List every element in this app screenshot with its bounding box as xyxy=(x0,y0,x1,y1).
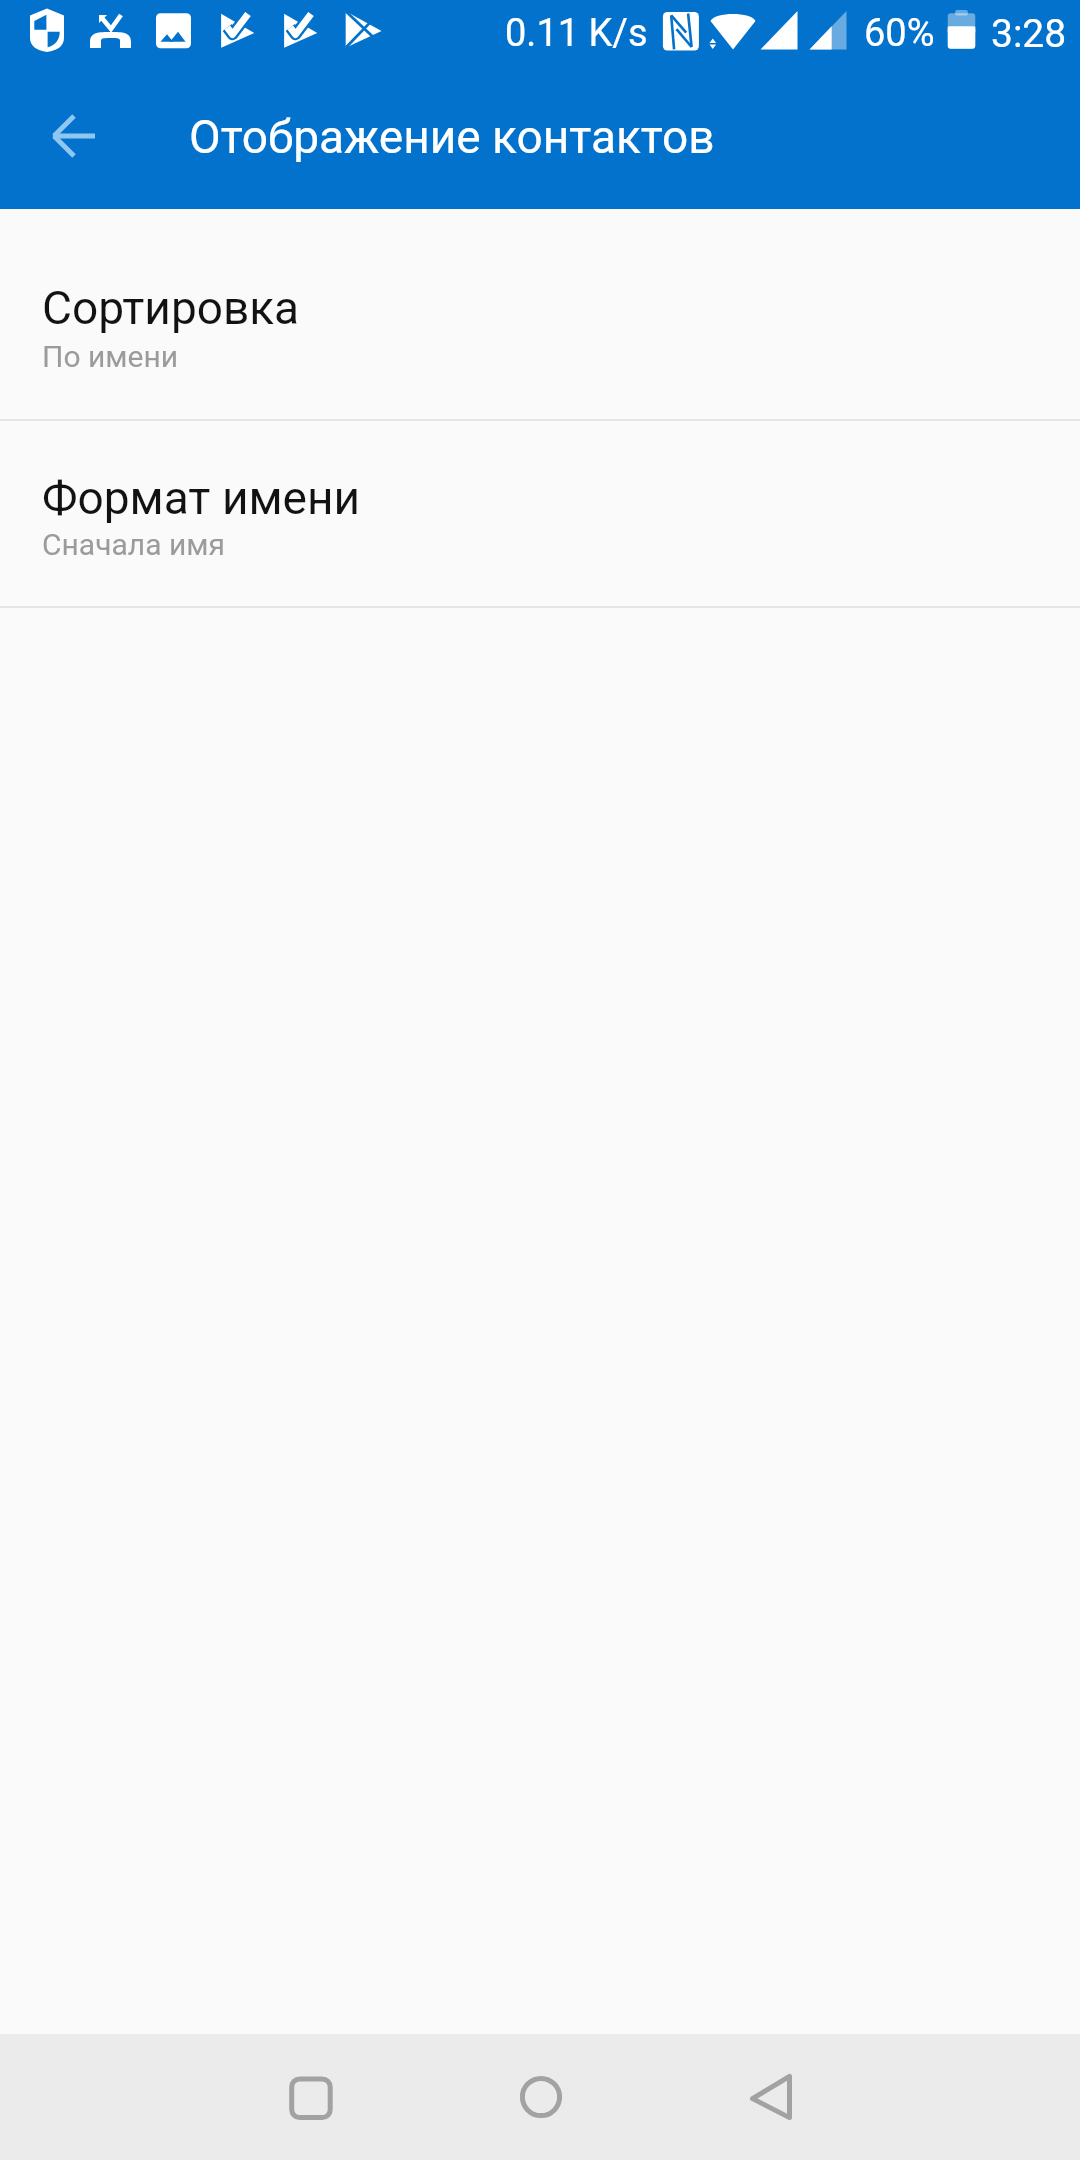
button[interactable]: Формат имени xyxy=(0,421,1080,606)
staticText: Сначала имя xyxy=(42,527,225,562)
staticText: 60% xyxy=(864,11,935,56)
button[interactable]: Назад xyxy=(28,96,108,176)
staticText: 0.11 K/s xyxy=(505,11,648,56)
button[interactable]: Назад xyxy=(731,2057,811,2137)
staticText: По имени xyxy=(42,339,179,374)
button[interactable]: Главный экран xyxy=(501,2057,581,2137)
staticText: Формат имени xyxy=(42,471,361,525)
button[interactable]: Обзор xyxy=(271,2057,351,2137)
staticText: 3:28 xyxy=(991,11,1067,57)
staticText: Отображение контактов xyxy=(189,110,715,164)
staticText: Сортировка xyxy=(42,281,300,335)
button[interactable]: Сортировка xyxy=(0,209,1080,419)
